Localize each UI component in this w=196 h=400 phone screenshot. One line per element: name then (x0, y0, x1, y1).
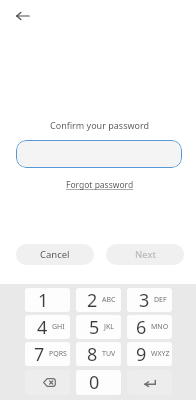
staticText: MNO (151, 322, 169, 332)
button[interactable]: Backspace (25, 370, 70, 395)
button[interactable]: 4 (25, 315, 70, 339)
button[interactable]: Next (106, 244, 184, 265)
button[interactable]: 1 (25, 288, 70, 312)
button[interactable]: 7 (25, 342, 70, 366)
staticText: 3 (139, 288, 150, 312)
staticText: Next (135, 248, 156, 261)
button[interactable]: 2 (76, 288, 121, 312)
button[interactable]: 8 (76, 342, 121, 366)
staticText: Forgot password (66, 179, 134, 191)
staticText: 1 (38, 288, 49, 312)
staticText: WXYZ (151, 349, 170, 359)
staticText: DEF (154, 295, 167, 305)
staticText: ABC (102, 295, 116, 305)
button[interactable]: 3 (127, 288, 172, 312)
button[interactable]: 5 (76, 315, 121, 339)
staticText: GHI (52, 322, 65, 332)
button[interactable]: Back (9, 2, 37, 30)
button[interactable] (16, 140, 182, 168)
staticText: TUV (102, 349, 116, 359)
button[interactable]: 0 (76, 370, 121, 395)
button[interactable]: Forgot password (63, 178, 137, 192)
button[interactable]: Enter (127, 370, 172, 395)
staticText: 7 (34, 342, 45, 366)
staticText: PQRS (49, 349, 67, 359)
staticText: 6 (136, 315, 147, 339)
staticText: Confirm your password (50, 119, 150, 131)
button[interactable]: 9 (127, 342, 172, 366)
staticText: 4 (37, 315, 48, 339)
staticText: 8 (87, 342, 98, 366)
button[interactable]: 6 (127, 315, 172, 339)
staticText: Cancel (40, 248, 70, 261)
button[interactable]: Cancel (16, 244, 94, 265)
staticText: 9 (136, 342, 147, 366)
staticText: JKL (104, 322, 114, 332)
staticText: 0 (89, 370, 100, 395)
staticText: 2 (87, 288, 98, 312)
staticText: 5 (89, 315, 100, 339)
